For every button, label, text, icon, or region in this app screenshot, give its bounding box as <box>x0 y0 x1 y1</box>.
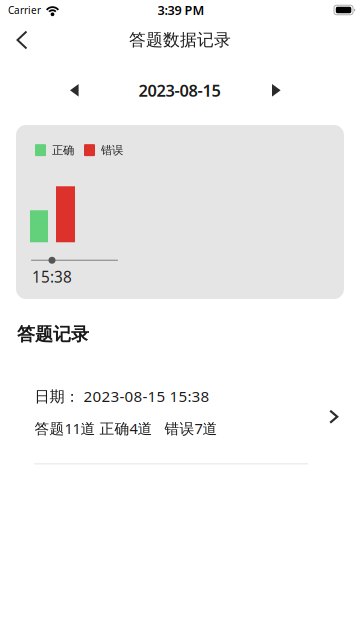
staticText: 错误 <box>101 143 123 157</box>
staticText: Carrier <box>8 3 41 17</box>
staticText: 正确 <box>52 143 74 157</box>
staticText: 答题11道 正确4道 错误7道 <box>34 418 217 438</box>
staticText: 日期： 2023-08-15 15:38 <box>34 386 209 406</box>
button[interactable]: Previous day <box>56 74 93 107</box>
button[interactable]: Back <box>0 22 44 58</box>
staticText: 答题数据记录 <box>129 29 231 51</box>
staticText: 答题记录 <box>17 323 89 346</box>
staticText: 2023-08-15 <box>138 79 220 102</box>
button[interactable]: Next day <box>258 74 295 107</box>
staticText: 3:39 PM <box>157 1 204 19</box>
button[interactable]: 日期： 2023-08-15 15:38 <box>0 346 360 464</box>
staticText: 15:38 <box>32 266 72 287</box>
